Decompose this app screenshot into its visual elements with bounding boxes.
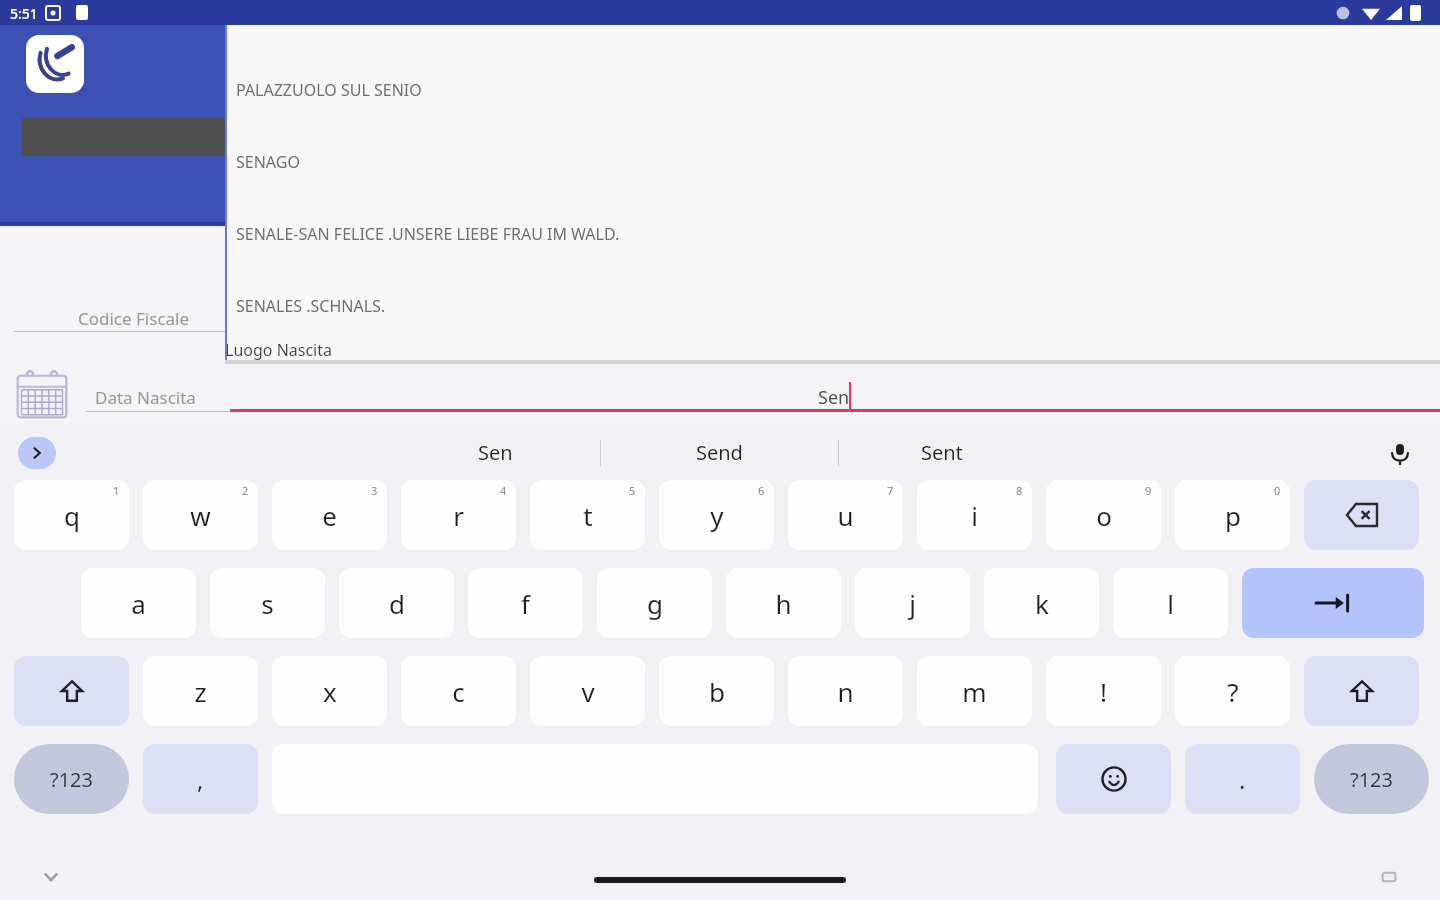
staticText: !: [1100, 674, 1107, 709]
staticText: h: [775, 586, 792, 621]
button[interactable]: Pick date: [8, 366, 76, 424]
button[interactable]: Shift: [14, 656, 129, 726]
button[interactable]: u: [788, 480, 903, 550]
button[interactable]: d: [339, 568, 454, 638]
button[interactable]: ?: [1175, 656, 1290, 726]
staticText: 4: [500, 483, 507, 498]
staticText: s: [261, 586, 274, 621]
staticText: 7: [887, 483, 894, 498]
button[interactable]: ?123: [1314, 744, 1429, 814]
button[interactable]: f: [468, 568, 583, 638]
button[interactable]: Emoji: [1056, 744, 1171, 814]
staticText: x: [323, 674, 337, 709]
button[interactable]: Voice input: [1382, 436, 1418, 472]
button[interactable]: b: [659, 656, 774, 726]
staticText: Sent: [921, 439, 963, 466]
staticText: Data Nascita: [95, 386, 196, 409]
button[interactable]: h: [726, 568, 841, 638]
button[interactable]: ,: [143, 744, 258, 814]
staticText: Send: [696, 439, 743, 466]
staticText: 1: [113, 483, 120, 498]
button[interactable]: z: [143, 656, 258, 726]
button[interactable]: Backspace: [1304, 480, 1419, 550]
staticText: y: [710, 498, 724, 533]
button[interactable]: SENALE-SAN FELICE .UNSERE LIEBE FRAU IM …: [225, 198, 1440, 270]
button[interactable]: Sen: [425, 430, 565, 474]
staticText: g: [647, 586, 663, 621]
staticText: q: [64, 498, 80, 533]
button[interactable]: w: [143, 480, 258, 550]
staticText: SENAGO: [236, 151, 300, 173]
button[interactable]: j: [855, 568, 970, 638]
staticText: p: [1225, 498, 1241, 533]
button[interactable]: App icon: [26, 35, 84, 93]
button[interactable]: q: [14, 480, 129, 550]
staticText: 5: [629, 483, 636, 498]
button[interactable]: PALAZZUOLO SUL SENIO: [225, 54, 1440, 126]
button[interactable]: Next field: [1242, 568, 1424, 638]
staticText: k: [1035, 586, 1049, 621]
button[interactable]: r: [401, 480, 516, 550]
staticText: Luogo Nascita: [225, 339, 332, 361]
button[interactable]: g: [597, 568, 712, 638]
staticText: SENALES .SCHNALS.: [236, 295, 386, 317]
staticText: 5:51: [10, 4, 38, 23]
staticText: ?123: [50, 766, 93, 793]
staticText: ?: [1227, 674, 1239, 709]
staticText: f: [521, 586, 530, 621]
button[interactable]: o: [1046, 480, 1161, 550]
button[interactable]: c: [401, 656, 516, 726]
staticText: a: [131, 586, 146, 621]
staticText: 3: [371, 483, 378, 498]
button[interactable]: x: [272, 656, 387, 726]
button[interactable]: k: [984, 568, 1099, 638]
staticText: Sen: [818, 385, 850, 410]
button[interactable]: v: [530, 656, 645, 726]
button[interactable]: m: [917, 656, 1032, 726]
button[interactable]: !: [1046, 656, 1161, 726]
button[interactable]: n: [788, 656, 903, 726]
button[interactable]: SENAGO: [225, 126, 1440, 198]
button[interactable]: Sent: [872, 430, 1012, 474]
button[interactable]: l: [1113, 568, 1228, 638]
staticText: j: [909, 586, 916, 621]
button[interactable]: ?123: [14, 744, 129, 814]
staticText: Codice Fiscale: [78, 307, 190, 330]
staticText: SENALE-SAN FELICE .UNSERE LIEBE FRAU IM …: [236, 223, 620, 245]
button[interactable]: SENALES .SCHNALS.: [225, 270, 1440, 342]
button[interactable]: Hide keyboard: [40, 866, 62, 888]
button[interactable]: More suggestions: [18, 437, 56, 469]
staticText: Sen: [478, 439, 513, 466]
staticText: c: [452, 674, 465, 709]
staticText: 0: [1274, 483, 1281, 498]
staticText: e: [322, 498, 337, 533]
staticText: z: [194, 674, 207, 709]
staticText: b: [709, 674, 725, 709]
button[interactable]: p: [1175, 480, 1290, 550]
staticText: PALAZZUOLO SUL SENIO: [236, 79, 422, 101]
staticText: 6: [758, 483, 765, 498]
staticText: r: [453, 498, 464, 533]
staticText: ?123: [1350, 766, 1393, 793]
staticText: i: [971, 498, 978, 533]
button[interactable]: Send: [649, 430, 789, 474]
staticText: .: [1239, 763, 1246, 796]
button[interactable]: s: [210, 568, 325, 638]
staticText: t: [583, 498, 593, 533]
button[interactable]: i: [917, 480, 1032, 550]
staticText: v: [581, 674, 595, 709]
staticText: n: [837, 674, 854, 709]
staticText: d: [389, 586, 405, 621]
staticText: w: [190, 498, 211, 533]
staticText: ,: [197, 763, 204, 796]
button[interactable]: Keyboard settings: [1378, 866, 1400, 888]
staticText: u: [837, 498, 854, 533]
button[interactable]: e: [272, 480, 387, 550]
button[interactable]: a: [81, 568, 196, 638]
button[interactable]: Shift: [1304, 656, 1419, 726]
staticText: 9: [1145, 483, 1152, 498]
button[interactable]: y: [659, 480, 774, 550]
button[interactable]: t: [530, 480, 645, 550]
button[interactable]: .: [1185, 744, 1300, 814]
